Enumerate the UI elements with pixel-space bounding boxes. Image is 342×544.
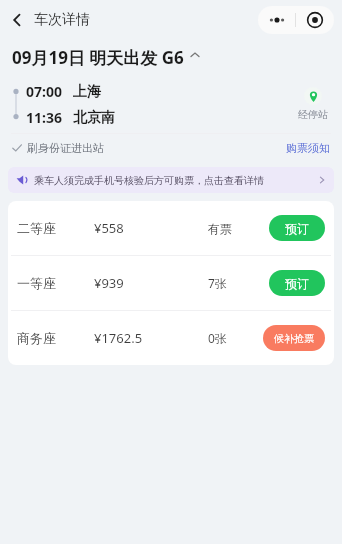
staticText: 北京南 <box>73 109 115 127</box>
staticText: 有票 <box>208 221 232 236</box>
staticText: 一等座 <box>17 275 56 291</box>
staticText: 车次详情 <box>34 11 90 29</box>
button[interactable]: Close <box>296 6 334 34</box>
staticText: 乘车人须完成手机号核验后方可购票，点击查看详情 <box>34 174 264 187</box>
button[interactable]: 09月19日 明天出发 G6 <box>12 46 342 69</box>
other: Expand <box>190 50 200 60</box>
button[interactable]: 一等座 <box>8 256 334 310</box>
staticText: 0张 <box>208 330 227 346</box>
staticText: 上海 <box>73 83 101 101</box>
button[interactable]: Back <box>0 7 98 33</box>
staticText: 刷身份证进出站 <box>27 141 104 155</box>
staticText: 经停站 <box>298 108 328 121</box>
staticText: 09月19日 明天出发 G6 <box>12 46 184 69</box>
button[interactable]: 预订 <box>269 270 325 296</box>
button[interactable]: 购票须知 <box>286 141 330 155</box>
staticText: 候补抢票 <box>274 332 314 345</box>
button[interactable]: 经停站 <box>298 87 328 121</box>
staticText: 7张 <box>208 275 227 291</box>
button[interactable]: 商务座 <box>8 311 334 365</box>
staticText: 购票须知 <box>286 141 330 155</box>
staticText: ¥939 <box>94 274 124 292</box>
other: Back <box>10 13 24 27</box>
staticText: 预订 <box>285 276 309 291</box>
staticText: 07:00 <box>26 82 62 101</box>
staticText: ¥558 <box>94 219 124 237</box>
staticText: 预订 <box>285 221 309 236</box>
staticText: 商务座 <box>17 330 56 346</box>
button[interactable]: 二等座 <box>8 201 334 255</box>
staticText: 11:36 <box>26 108 62 127</box>
button[interactable]: 预订 <box>269 215 325 241</box>
staticText: 二等座 <box>17 220 56 236</box>
staticText: ¥1762.5 <box>94 329 143 347</box>
button[interactable]: More <box>258 6 295 34</box>
button[interactable]: 候补抢票 <box>263 325 325 351</box>
button[interactable]: 乘车人须完成手机号核验后方可购票，点击查看详情 <box>8 167 334 193</box>
